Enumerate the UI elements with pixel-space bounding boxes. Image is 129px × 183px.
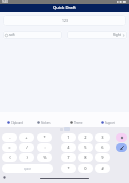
button[interactable]: 123 <box>3 15 126 26</box>
staticText: 8 <box>84 155 87 160</box>
button[interactable]: Enter <box>116 143 127 152</box>
button[interactable]: 1 <box>61 133 76 142</box>
button[interactable]: Right <box>67 31 127 39</box>
button[interactable]: 4 <box>61 143 76 152</box>
staticText: 1 <box>67 135 70 140</box>
staticText: 3 <box>101 135 104 140</box>
button[interactable]: Change keyboard <box>3 176 6 179</box>
staticText: : <box>44 145 46 150</box>
button[interactable]: # <box>95 164 110 173</box>
button[interactable]: 6 <box>95 143 110 152</box>
staticText: * <box>43 135 46 140</box>
button[interactable]: 2 <box>78 133 93 142</box>
button[interactable]: Backspace <box>116 133 127 142</box>
button[interactable]: Stickers <box>37 119 51 126</box>
staticText: / <box>26 145 28 150</box>
button[interactable]: - <box>2 133 17 142</box>
staticText: ) <box>26 155 28 160</box>
button[interactable]: 0 <box>78 164 93 173</box>
button[interactable]: Support <box>101 119 115 126</box>
button[interactable]: + <box>19 133 34 142</box>
staticText: 0 <box>84 166 87 171</box>
staticText: * <box>67 166 70 171</box>
button[interactable]: soft <box>3 31 62 39</box>
staticText: space <box>24 167 32 171</box>
staticText: Theme <box>74 121 83 125</box>
staticText: ( <box>9 155 11 160</box>
button[interactable]: 7 <box>61 153 76 162</box>
button[interactable]: * <box>37 133 52 142</box>
staticText: Support <box>105 121 115 125</box>
button[interactable]: Theme <box>70 119 83 126</box>
staticText: Clipboard <box>11 121 23 125</box>
staticText: soft <box>9 33 15 37</box>
button[interactable]: % <box>37 153 52 162</box>
staticText: % <box>43 155 47 160</box>
button[interactable]: 3 <box>95 133 110 142</box>
staticText: 7 <box>67 155 70 160</box>
staticText: 6 <box>101 145 104 150</box>
button[interactable]: / <box>19 143 34 152</box>
button[interactable]: * <box>61 164 76 173</box>
staticText: Quick Draft <box>53 5 76 11</box>
button[interactable]: 8 <box>78 153 93 162</box>
staticText: = <box>8 145 11 150</box>
staticText: 2 <box>84 135 87 140</box>
button[interactable]: ) <box>19 153 34 162</box>
staticText: 9:30 <box>2 0 8 4</box>
staticText: - <box>9 135 11 140</box>
staticText: + <box>25 135 28 140</box>
button[interactable]: Clipboard <box>7 119 23 126</box>
staticText: 5 <box>84 145 87 150</box>
button[interactable]: : <box>37 143 52 152</box>
button[interactable]: ( <box>2 153 17 162</box>
staticText: Stickers <box>41 121 51 125</box>
button[interactable]: = <box>2 143 17 152</box>
button[interactable]: 5 <box>78 143 93 152</box>
button[interactable]: space <box>2 164 53 173</box>
staticText: Right <box>113 33 121 37</box>
staticText: # <box>101 166 104 171</box>
staticText: 4 <box>67 145 70 150</box>
button[interactable]: 9 <box>95 153 110 162</box>
staticText: 123 <box>62 18 68 23</box>
staticText: 9 <box>101 155 104 160</box>
